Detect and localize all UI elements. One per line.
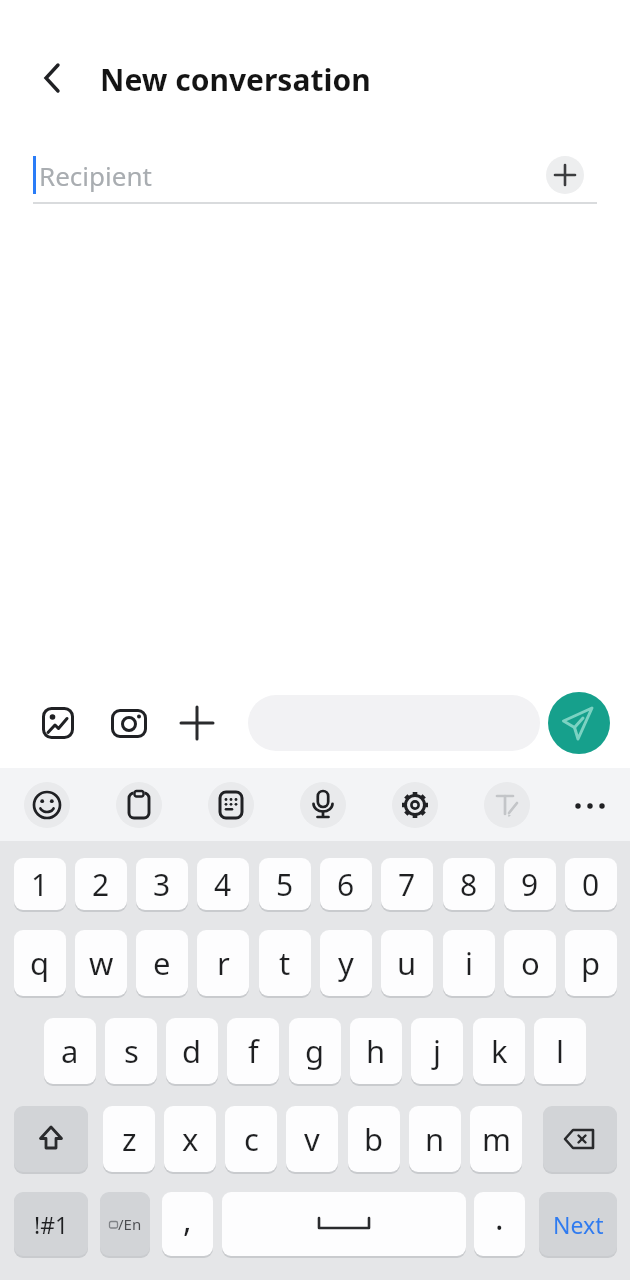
button[interactable]: e: [136, 930, 188, 996]
button[interactable]: h: [350, 1018, 402, 1084]
staticText: x: [182, 1118, 199, 1160]
button[interactable]: 8: [443, 858, 495, 910]
button[interactable]: 0: [565, 858, 617, 910]
button[interactable]: [222, 1192, 466, 1256]
staticText: k: [491, 1030, 508, 1072]
button[interactable]: i: [443, 930, 495, 996]
staticText: t: [279, 942, 291, 984]
button[interactable]: d: [166, 1018, 218, 1084]
button[interactable]: [543, 1106, 617, 1172]
staticText: Next: [553, 1209, 604, 1240]
staticText: 5: [276, 864, 294, 905]
button[interactable]: g: [289, 1018, 341, 1084]
button[interactable]: [548, 692, 610, 754]
staticText: 4: [214, 864, 232, 905]
staticText: .: [495, 1196, 504, 1240]
button[interactable]: 7: [381, 858, 433, 910]
button[interactable]: 6: [320, 858, 372, 910]
button[interactable]: !#1: [14, 1192, 88, 1256]
staticText: 9: [521, 864, 539, 905]
button[interactable]: z: [103, 1106, 155, 1172]
staticText: p: [581, 942, 601, 984]
button[interactable]: p: [565, 930, 617, 996]
button[interactable]: y: [320, 930, 372, 996]
staticText: r: [217, 942, 230, 984]
staticText: 3: [153, 864, 171, 905]
button[interactable]: v: [286, 1106, 338, 1172]
button[interactable]: s: [105, 1018, 157, 1084]
button[interactable]: 2: [75, 858, 127, 910]
staticText: /En: [118, 1214, 142, 1234]
button[interactable]: f: [227, 1018, 279, 1084]
button[interactable]: [30, 56, 74, 100]
staticText: e: [153, 942, 171, 984]
staticText: z: [122, 1118, 137, 1160]
button[interactable]: [116, 782, 162, 828]
button[interactable]: [392, 782, 438, 828]
button[interactable]: 1: [14, 858, 66, 910]
button[interactable]: n: [409, 1106, 461, 1172]
button[interactable]: 5: [259, 858, 311, 910]
button[interactable]: c: [225, 1106, 277, 1172]
staticText: !#1: [34, 1209, 69, 1240]
button[interactable]: t: [259, 930, 311, 996]
button[interactable]: a: [44, 1018, 96, 1084]
staticText: w: [89, 942, 114, 984]
staticText: h: [366, 1030, 386, 1072]
staticText: q: [30, 942, 50, 984]
button[interactable]: [24, 782, 70, 828]
staticText: f: [248, 1030, 259, 1072]
button[interactable]: 9: [504, 858, 556, 910]
button[interactable]: [208, 782, 254, 828]
button[interactable]: .: [474, 1192, 525, 1256]
button[interactable]: ,: [162, 1192, 213, 1256]
button[interactable]: b: [348, 1106, 400, 1172]
button[interactable]: [568, 785, 612, 825]
staticText: 8: [460, 864, 478, 905]
staticText: d: [182, 1030, 202, 1072]
staticText: l: [556, 1030, 564, 1072]
button[interactable]: u: [381, 930, 433, 996]
button[interactable]: [179, 705, 215, 741]
staticText: ,: [183, 1198, 192, 1242]
staticText: y: [338, 942, 354, 984]
button[interactable]: [300, 782, 346, 828]
button[interactable]: w: [75, 930, 127, 996]
staticText: 7: [398, 864, 416, 905]
button[interactable]: [484, 782, 530, 828]
staticText: b: [364, 1118, 384, 1160]
staticText: 1: [31, 864, 49, 905]
staticText: v: [304, 1118, 320, 1160]
button[interactable]: x: [164, 1106, 216, 1172]
button[interactable]: [14, 1106, 88, 1172]
staticText: i: [465, 942, 473, 984]
button[interactable]: [546, 156, 584, 194]
staticText: a: [61, 1030, 79, 1072]
button[interactable]: Next: [539, 1192, 617, 1256]
button[interactable]: [109, 705, 149, 741]
button[interactable]: o: [504, 930, 556, 996]
button[interactable]: m: [470, 1106, 522, 1172]
button[interactable]: [40, 705, 76, 741]
staticText: o: [521, 942, 540, 984]
staticText: g: [305, 1030, 325, 1072]
staticText: u: [397, 942, 417, 984]
staticText: m: [482, 1118, 511, 1160]
button[interactable]: q: [14, 930, 66, 996]
staticText: c: [244, 1118, 259, 1160]
staticText: 6: [337, 864, 355, 905]
button[interactable]: k: [473, 1018, 525, 1084]
button[interactable]: 3: [136, 858, 188, 910]
staticText: 0: [582, 864, 600, 905]
staticText: 2: [92, 864, 110, 905]
button[interactable]: r: [197, 930, 249, 996]
staticText: s: [124, 1030, 139, 1072]
staticText: j: [433, 1030, 441, 1072]
button[interactable]: j: [411, 1018, 463, 1084]
button[interactable]: 4: [197, 858, 249, 910]
button[interactable]: /En: [100, 1192, 150, 1256]
staticText: n: [425, 1118, 445, 1160]
button[interactable]: l: [534, 1018, 586, 1084]
staticText: Recipient: [39, 158, 152, 193]
